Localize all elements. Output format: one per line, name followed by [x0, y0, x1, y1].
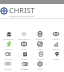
staticText: Tasks — [37, 48, 43, 51]
staticText: Campus — [20, 68, 29, 71]
staticText: Attendance — [18, 38, 30, 41]
button[interactable]: Profile — [48, 51, 64, 61]
staticText: News — [37, 68, 43, 71]
button[interactable]: Attendance — [16, 31, 32, 41]
staticText: Library — [52, 38, 60, 41]
button[interactable]: News — [32, 61, 48, 71]
staticText: ID Card — [4, 58, 12, 61]
staticText: Academics — [3, 38, 14, 41]
staticText: Notices — [4, 68, 12, 71]
button[interactable]: Fees — [16, 41, 32, 51]
button[interactable]: Calendar — [32, 31, 48, 41]
button[interactable]: Forms — [32, 51, 48, 61]
staticText: Sports — [5, 48, 12, 51]
button[interactable]: Results — [48, 41, 64, 51]
button[interactable]: Campus — [16, 61, 32, 71]
button[interactable]: ID Card — [0, 51, 16, 61]
button[interactable]: Library — [48, 31, 64, 41]
button[interactable]: Sports — [0, 41, 16, 51]
staticText: Results — [52, 48, 60, 51]
staticText: Forms — [37, 58, 44, 61]
button[interactable]: Tasks — [32, 41, 48, 51]
staticText: Calendar — [35, 38, 45, 41]
button[interactable]: Academics — [0, 31, 16, 41]
staticText: Hostel — [21, 58, 28, 61]
button[interactable]: Notices — [0, 61, 16, 71]
staticText: Fees — [22, 48, 27, 51]
staticText: CHRIST — [9, 5, 35, 15]
staticText: Profile — [53, 58, 60, 61]
staticText: Deemed to be University — [9, 15, 35, 18]
button[interactable]: Hostel — [16, 51, 32, 61]
other: CHRIST logo — [0, 7, 8, 15]
